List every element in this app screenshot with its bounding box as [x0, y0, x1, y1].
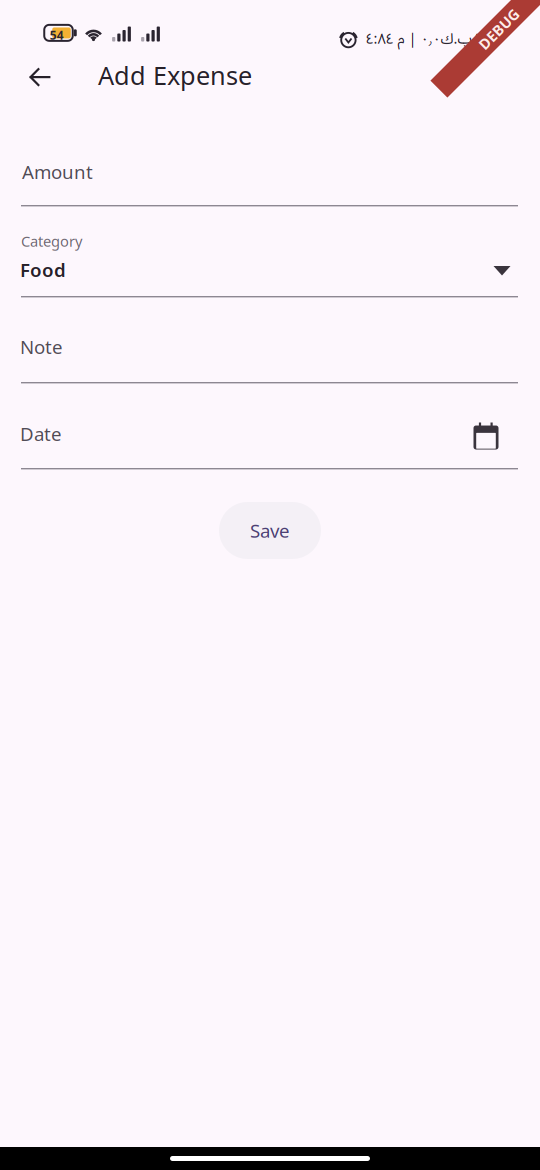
button[interactable]: Pick date	[469, 419, 503, 453]
staticText: ث/ب.ك٠٫٠ | م ٤:٨٤	[365, 23, 492, 54]
staticText: Add Expense	[98, 58, 252, 92]
staticText: Note	[20, 334, 63, 359]
staticText: Date	[20, 421, 62, 446]
staticText: DEBUG	[473, 19, 524, 39]
button[interactable]: Choose category	[484, 255, 520, 287]
staticText: 54	[50, 27, 64, 43]
staticText: Category	[21, 231, 82, 251]
button[interactable]: Back	[12, 49, 68, 105]
staticText: Amount	[22, 159, 93, 184]
button[interactable]: Save	[219, 502, 321, 559]
staticText: Food	[20, 257, 66, 282]
staticText: Save	[250, 518, 290, 543]
